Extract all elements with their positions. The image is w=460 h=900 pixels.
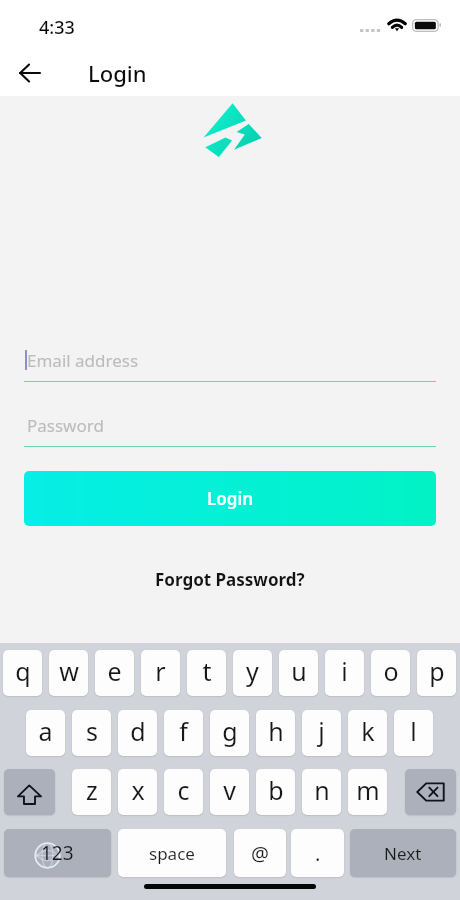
button[interactable]: @: [234, 829, 286, 877]
button[interactable]: q: [3, 650, 42, 696]
button[interactable]: b: [256, 769, 295, 815]
button[interactable]: Back: [8, 52, 50, 94]
button[interactable]: c: [164, 769, 203, 815]
button[interactable]: u: [279, 650, 318, 696]
button[interactable]: z: [72, 769, 111, 815]
button[interactable]: Backspace: [405, 769, 456, 815]
staticText: space: [149, 842, 195, 865]
staticText: @: [251, 840, 269, 867]
staticText: j: [318, 714, 325, 748]
button[interactable]: d: [118, 710, 157, 756]
button[interactable]: k: [348, 710, 387, 756]
button[interactable]: y: [233, 650, 272, 696]
button[interactable]: t: [187, 650, 226, 696]
staticText: i: [341, 654, 348, 688]
button[interactable]: a: [26, 710, 65, 756]
button[interactable]: p: [417, 650, 456, 696]
button[interactable]: e: [95, 650, 134, 696]
button[interactable]: Shift: [4, 769, 55, 815]
staticText: d: [130, 714, 146, 748]
button[interactable]: s: [72, 710, 111, 756]
button[interactable]: .: [291, 829, 344, 877]
staticText: w: [59, 654, 79, 688]
staticText: y: [246, 654, 259, 688]
button[interactable]: v: [210, 769, 249, 815]
staticText: x: [131, 773, 145, 807]
staticText: g: [222, 714, 238, 748]
button[interactable]: 123: [4, 829, 111, 877]
button[interactable]: x: [118, 769, 157, 815]
button[interactable]: o: [371, 650, 410, 696]
staticText: u: [291, 654, 307, 688]
staticText: l: [410, 714, 417, 748]
staticText: k: [361, 714, 375, 748]
staticText: 4:33: [39, 15, 75, 40]
button[interactable]: g: [210, 710, 249, 756]
staticText: Next: [384, 842, 422, 865]
button[interactable]: h: [256, 710, 295, 756]
staticText: c: [177, 773, 190, 807]
button[interactable]: w: [49, 650, 88, 696]
staticText: f: [179, 714, 188, 748]
button[interactable]: Next: [350, 829, 456, 877]
staticText: Login: [88, 58, 147, 88]
staticText: 123: [41, 840, 74, 866]
staticText: o: [383, 654, 399, 688]
button[interactable]: f: [164, 710, 203, 756]
staticText: h: [268, 714, 284, 748]
staticText: s: [86, 714, 98, 748]
staticText: a: [38, 714, 53, 748]
staticText: .: [315, 840, 321, 867]
staticText: Login: [207, 487, 254, 510]
button[interactable]: r: [141, 650, 180, 696]
staticText: b: [268, 773, 284, 807]
button[interactable]: m: [348, 769, 387, 815]
staticText: r: [155, 654, 166, 688]
button[interactable]: space: [118, 829, 226, 877]
staticText: p: [429, 654, 445, 688]
button[interactable]: i: [325, 650, 364, 696]
staticText: n: [314, 773, 330, 807]
button[interactable]: Login: [24, 471, 436, 526]
button[interactable]: Forgot Password?: [155, 568, 305, 591]
button[interactable]: l: [394, 710, 433, 756]
staticText: Password: [27, 414, 104, 437]
staticText: q: [15, 654, 31, 688]
staticText: v: [223, 773, 236, 807]
staticText: m: [356, 773, 380, 807]
button[interactable]: j: [302, 710, 341, 756]
staticText: t: [202, 654, 212, 688]
staticText: e: [107, 654, 122, 688]
staticText: z: [86, 773, 98, 807]
staticText: Email address: [27, 349, 139, 372]
button[interactable]: n: [302, 769, 341, 815]
